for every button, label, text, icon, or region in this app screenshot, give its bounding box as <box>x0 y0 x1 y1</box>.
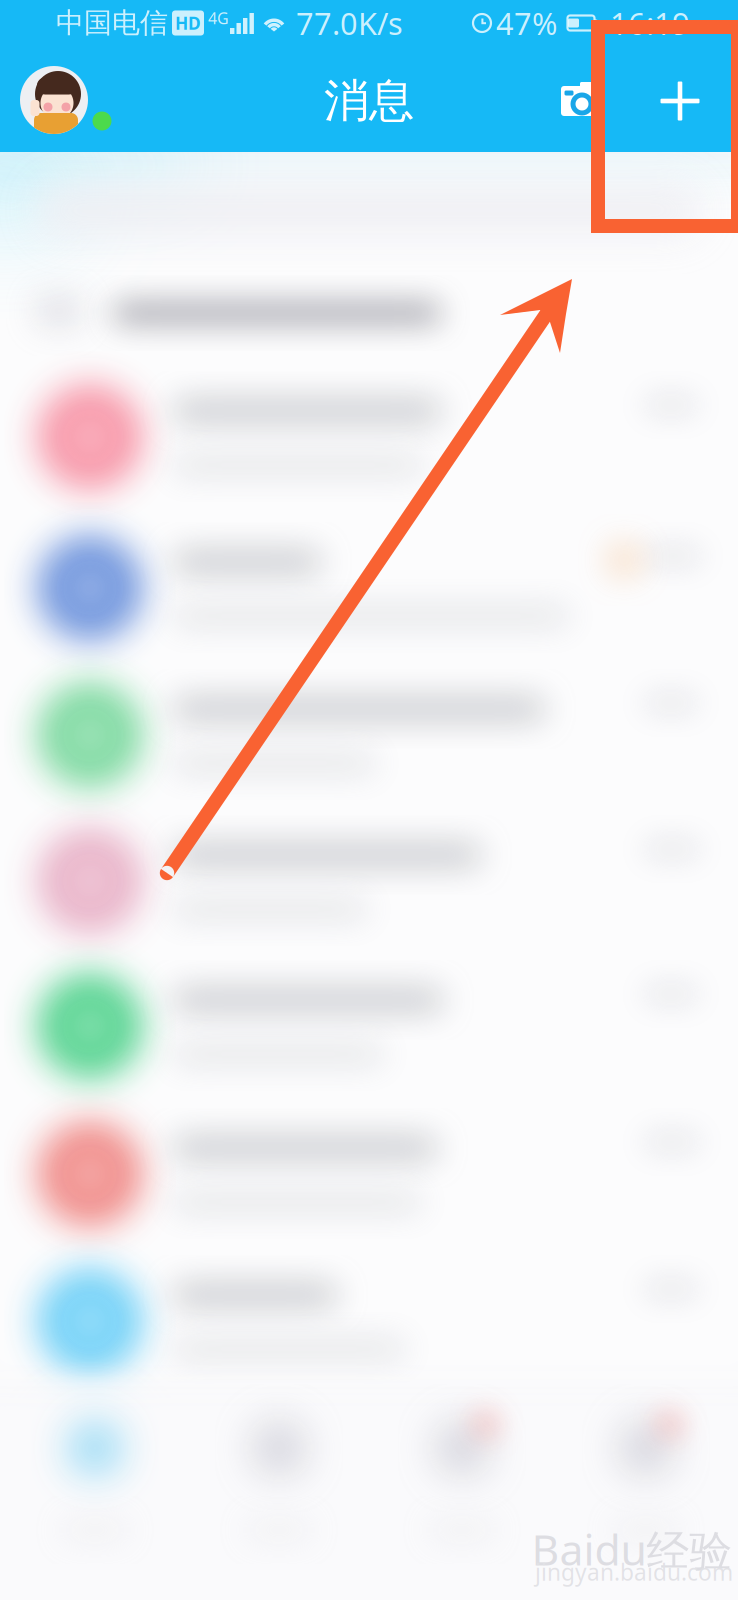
button[interactable]: Add <box>654 75 706 127</box>
staticText: jingyan.baidu.com <box>535 1557 733 1587</box>
staticText: 77.0K/s <box>296 3 403 43</box>
staticText: 16:19 <box>610 3 690 43</box>
staticText: 4G <box>208 7 229 29</box>
staticText: HD <box>175 11 201 34</box>
button[interactable]: Camera <box>554 78 602 126</box>
staticText: Baidu经验 <box>531 1521 732 1577</box>
staticText: 中国电信 <box>56 6 168 40</box>
button[interactable]: Profile <box>6 52 126 148</box>
staticText: 47% <box>496 3 557 43</box>
staticText: 消息 <box>324 73 414 129</box>
